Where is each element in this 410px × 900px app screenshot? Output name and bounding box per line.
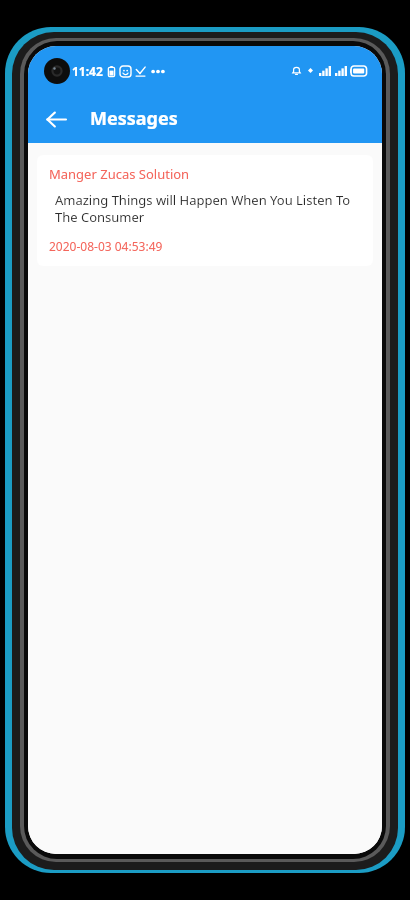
staticText: 11:42 bbox=[72, 63, 103, 79]
staticText: Messages bbox=[90, 106, 178, 131]
staticText: Manger Zucas Solution bbox=[49, 165, 190, 183]
button[interactable]: Back bbox=[36, 99, 76, 139]
staticText: 2020-08-03 04:53:49 bbox=[49, 238, 163, 254]
staticText: Amazing Things will Happen When You List… bbox=[55, 191, 357, 226]
button[interactable]: Manger Zucas Solution bbox=[37, 155, 373, 266]
